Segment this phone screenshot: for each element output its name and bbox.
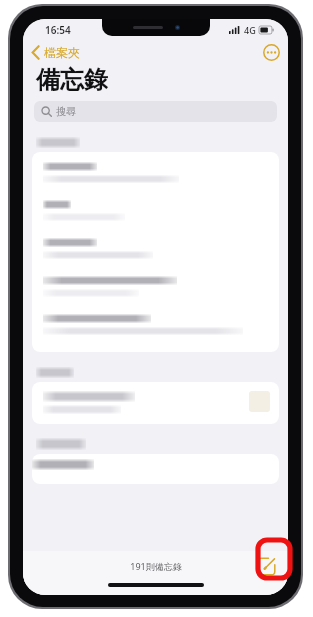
staticText: 191則備忘錄 (130, 560, 182, 572)
staticText: 搜尋 (56, 105, 76, 118)
button[interactable] (32, 195, 279, 233)
button[interactable] (32, 157, 279, 195)
button[interactable]: More options (255, 41, 288, 64)
button[interactable] (32, 309, 279, 347)
button[interactable] (32, 271, 279, 309)
staticText: 檔案夾 (44, 45, 80, 60)
button[interactable]: 搜尋 (34, 101, 277, 122)
staticText: 備忘錄 (36, 65, 108, 95)
button[interactable] (32, 386, 279, 420)
button[interactable]: 檔案夾 (23, 42, 88, 63)
staticText: 4G (244, 24, 256, 36)
button[interactable] (32, 233, 279, 271)
staticText: 16:54 (45, 23, 71, 37)
button[interactable]: New note (254, 554, 278, 578)
